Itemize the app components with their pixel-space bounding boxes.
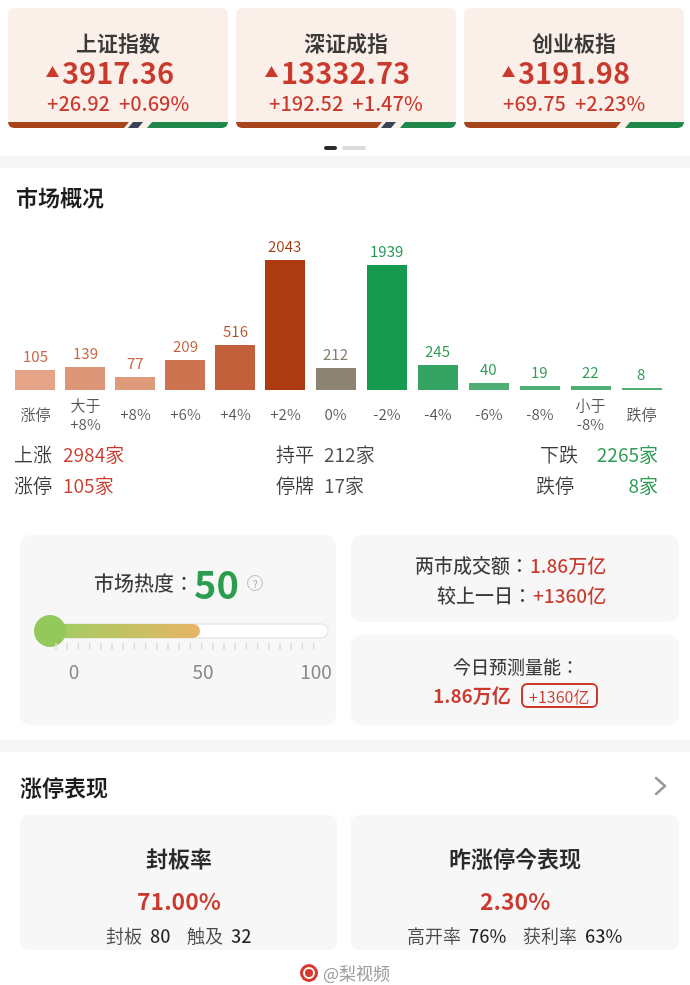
staticText: 212: [323, 343, 348, 365]
staticText: 3917.36: [62, 50, 175, 92]
button[interactable]: 创业板指: [464, 8, 684, 128]
staticText: -8%: [526, 403, 554, 425]
staticText: 139: [73, 342, 98, 364]
staticText: 封板: [106, 922, 142, 948]
staticText: +26.92 +0.69%: [47, 88, 190, 117]
staticText: 17家: [324, 471, 365, 499]
staticText: 跌停: [626, 403, 657, 425]
staticText: ?: [253, 576, 258, 590]
staticText: 市场概况: [16, 180, 105, 212]
staticText: 创业板指: [532, 27, 616, 57]
staticText: 1.86万亿: [433, 681, 511, 709]
staticText: 105家: [63, 471, 114, 499]
button[interactable]: 深证成指: [236, 8, 456, 128]
staticText: 22: [582, 361, 599, 383]
staticText: 下跌: [540, 440, 579, 468]
staticText: 持平: [276, 440, 315, 468]
button[interactable]: 上证指数: [8, 8, 228, 128]
staticText: 2.30%: [480, 883, 551, 916]
staticText: +1360亿: [533, 581, 607, 609]
staticText: 1.86万亿: [530, 551, 607, 579]
staticText: 50: [188, 657, 218, 685]
staticText: 13332.73: [281, 50, 411, 92]
staticText: +8%: [120, 403, 151, 425]
staticText: 71.00%: [137, 883, 221, 916]
staticText: +6%: [170, 403, 201, 425]
staticText: 209: [173, 335, 198, 357]
button[interactable]: 两市成交额：: [351, 535, 679, 622]
staticText: +4%: [220, 403, 251, 425]
staticText: 2043: [268, 235, 302, 257]
staticText: +69.75 +2.23%: [503, 88, 646, 117]
staticText: 上涨: [14, 440, 53, 468]
staticText: 停牌: [276, 471, 315, 499]
staticText: 小于 -8%: [575, 394, 606, 435]
button[interactable]: 市场热度：: [20, 535, 336, 725]
staticText: 封板率: [146, 841, 213, 873]
staticText: 上证指数: [76, 27, 160, 57]
staticText: 昨涨停今表现: [449, 841, 582, 873]
button[interactable]: 昨涨停今表现: [351, 815, 679, 950]
staticText: 8: [637, 363, 646, 385]
staticText: +1360亿: [529, 684, 590, 707]
staticText: 0: [64, 657, 84, 685]
staticText: 50: [194, 555, 239, 610]
staticText: 212家: [324, 440, 375, 468]
staticText: 40: [480, 358, 497, 380]
staticText: 涨停表现: [20, 770, 109, 802]
staticText: 大于 +8%: [70, 394, 101, 435]
staticText: 245: [425, 340, 450, 362]
staticText: 2265家: [540, 440, 658, 468]
staticText: 32: [231, 922, 252, 948]
staticText: 105: [23, 345, 48, 367]
staticText: 100: [296, 657, 336, 685]
staticText: 今日预测量能：: [453, 653, 579, 679]
staticText: @梨视频: [323, 960, 391, 985]
staticText: 涨停: [14, 471, 53, 499]
staticText: 市场热度：: [94, 568, 194, 597]
staticText: 8家: [540, 471, 658, 499]
staticText: 深证成指: [304, 27, 388, 57]
staticText: 涨停: [20, 403, 51, 425]
staticText: 80: [150, 922, 171, 948]
staticText: -6%: [475, 403, 503, 425]
staticText: 19: [531, 361, 548, 383]
staticText: 高开率: [407, 922, 461, 948]
button[interactable]: 封板率: [20, 815, 337, 950]
staticText: -2%: [373, 403, 401, 425]
staticText: 77: [127, 352, 144, 374]
staticText: 3191.98: [518, 50, 631, 92]
staticText: -4%: [424, 403, 452, 425]
staticText: 跌停: [536, 471, 575, 499]
staticText: 516: [223, 320, 248, 342]
staticText: 获利率: [523, 922, 577, 948]
button[interactable]: 今日预测量能：: [351, 635, 679, 725]
staticText: 63%: [585, 922, 623, 948]
staticText: 2984家: [63, 440, 125, 468]
staticText: +192.52 +1.47%: [269, 88, 423, 117]
staticText: 两市成交额：: [415, 551, 530, 579]
staticText: 76%: [469, 922, 507, 948]
staticText: 较上一日：: [437, 581, 533, 609]
staticText: 1939: [370, 240, 404, 262]
staticText: 触及: [187, 922, 223, 948]
staticText: +2%: [270, 403, 301, 425]
staticText: 0%: [324, 403, 347, 425]
